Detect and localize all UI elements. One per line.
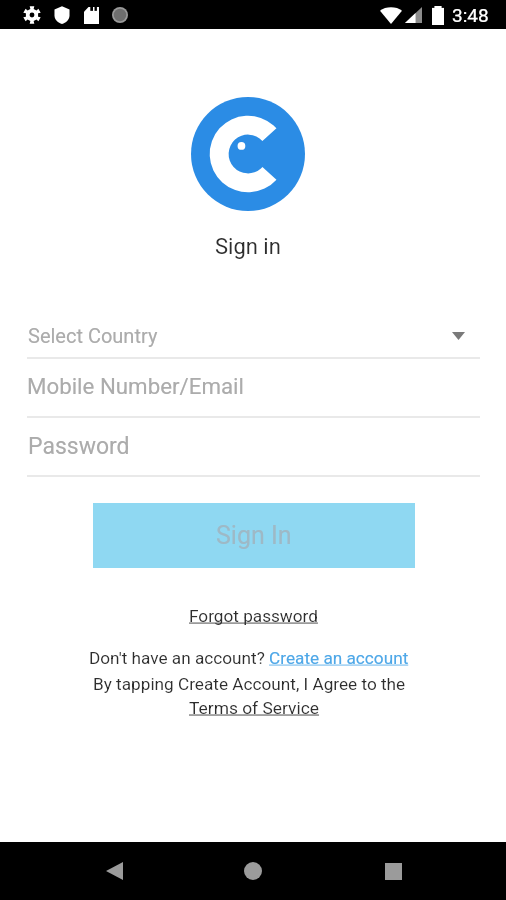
button[interactable]: Sign In <box>93 503 415 568</box>
staticText: Select Country <box>28 324 158 347</box>
staticText: Password <box>28 433 130 460</box>
button[interactable]: Recent apps <box>369 847 417 895</box>
staticText: Sign in <box>215 234 281 260</box>
staticText: Forgot password <box>189 606 318 626</box>
staticText: Mobile Number/Email <box>27 373 244 399</box>
button[interactable]: Select Country <box>27 318 480 360</box>
staticText: By tapping Create Account, I Agree to th… <box>93 674 406 694</box>
button[interactable]: Password <box>27 427 480 469</box>
staticText: Terms of Service <box>189 698 320 718</box>
staticText: 3:48 <box>452 4 489 26</box>
button[interactable]: Back <box>90 847 138 895</box>
button[interactable]: Forgot password <box>182 601 325 631</box>
staticText: Sign In <box>216 521 292 550</box>
button[interactable]: Don't have an account? Create an account <box>89 644 411 670</box>
button[interactable]: Home <box>229 847 277 895</box>
button[interactable]: Mobile Number/Email <box>27 367 480 409</box>
staticText: Don't have an account? Create an account <box>89 648 409 668</box>
button[interactable]: Terms of Service <box>184 694 324 721</box>
